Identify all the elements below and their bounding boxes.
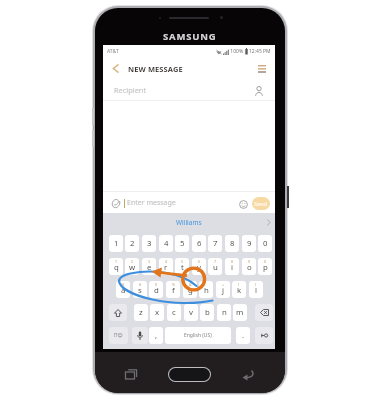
staticText: c: [172, 307, 176, 318]
staticText: +: [222, 282, 225, 287]
staticText: Send: [254, 200, 268, 207]
button[interactable]: 7: [208, 235, 222, 252]
staticText: 3: [148, 259, 151, 264]
staticText: ,: [155, 330, 158, 341]
staticText: 12:45 PM: [249, 48, 271, 55]
button[interactable]: 2: [125, 258, 139, 275]
staticText: English (US): [184, 332, 212, 339]
staticText: (: [238, 282, 240, 287]
staticText: 1: [115, 259, 118, 264]
staticText: 0: [264, 259, 267, 264]
staticText: h: [204, 285, 209, 296]
button[interactable]: Send: [252, 197, 270, 210]
staticText: 9: [248, 259, 251, 264]
staticText: %: [172, 282, 175, 287]
staticText: o: [247, 262, 252, 273]
button[interactable]: 8: [225, 235, 239, 252]
staticText: s: [138, 285, 142, 296]
staticText: g: [188, 285, 193, 296]
button[interactable]: Home: [168, 367, 211, 382]
button[interactable]: 8: [225, 258, 239, 275]
button[interactable]: 4: [159, 235, 173, 252]
staticText: 3: [147, 238, 152, 249]
button[interactable]: x: [150, 304, 164, 321]
button[interactable]: &: [183, 281, 197, 298]
button[interactable]: 9: [242, 258, 256, 275]
button[interactable]: (: [232, 281, 246, 298]
button[interactable]: Recents: [125, 368, 139, 382]
button[interactable]: n: [217, 304, 231, 321]
button[interactable]: 0: [258, 235, 272, 252]
button[interactable]: 7: [208, 258, 222, 275]
button[interactable]: c: [167, 304, 181, 321]
button[interactable]: 2: [125, 235, 139, 252]
staticText: i: [231, 262, 234, 273]
staticText: z: [139, 307, 143, 318]
button[interactable]: Space: [165, 327, 231, 344]
staticText: 7: [214, 259, 217, 264]
staticText: t: [181, 262, 184, 273]
staticText: v: [189, 307, 193, 318]
staticText: y: [197, 262, 201, 273]
button[interactable]: Emoji: [237, 198, 249, 210]
button[interactable]: Attach: [110, 197, 122, 209]
button[interactable]: @: [116, 281, 130, 298]
staticText: m: [236, 307, 244, 318]
button[interactable]: ,: [149, 327, 163, 344]
staticText: x: [155, 307, 160, 318]
button[interactable]: Backspace: [255, 304, 273, 321]
staticText: SAMSUNG: [163, 30, 217, 43]
button[interactable]: Voice input: [132, 327, 148, 344]
staticText: 8: [231, 259, 234, 264]
staticText: 6: [197, 238, 202, 249]
button[interactable]: #: [133, 281, 147, 298]
staticText: ): [255, 282, 257, 287]
button[interactable]: Menu: [255, 62, 268, 75]
button[interactable]: Back: [109, 62, 122, 75]
button[interactable]: 1: [109, 258, 123, 275]
button[interactable]: 5: [175, 258, 189, 275]
staticText: e: [147, 262, 152, 273]
button[interactable]: ): [249, 281, 263, 298]
button[interactable]: 9: [242, 235, 256, 252]
button[interactable]: z: [134, 304, 148, 321]
staticText: r: [164, 262, 168, 273]
staticText: 5: [181, 259, 184, 264]
button[interactable]: 6: [192, 258, 206, 275]
button[interactable]: v: [184, 304, 198, 321]
button[interactable]: Shift: [109, 304, 127, 321]
button[interactable]: 1: [109, 235, 123, 252]
staticText: $: [155, 282, 158, 287]
button[interactable]: m: [233, 304, 247, 321]
button[interactable]: 5: [175, 235, 189, 252]
staticText: w: [129, 262, 136, 273]
staticText: @: [121, 282, 125, 287]
button[interactable]: b: [200, 304, 214, 321]
button[interactable]: Symbols: [109, 327, 128, 344]
staticText: 4: [165, 259, 168, 264]
staticText: l: [255, 285, 258, 296]
staticText: d: [154, 285, 159, 296]
button[interactable]: -: [199, 281, 213, 298]
staticText: .: [242, 330, 245, 341]
button[interactable]: $: [149, 281, 163, 298]
button[interactable]: Back: [241, 368, 255, 382]
button[interactable]: 0: [258, 258, 272, 275]
button[interactable]: 3: [142, 258, 156, 275]
button[interactable]: .: [236, 327, 250, 344]
button[interactable]: Williams: [176, 218, 202, 227]
staticText: 2: [131, 259, 134, 264]
staticText: 0: [263, 238, 268, 249]
staticText: AT&T: [107, 48, 119, 55]
staticText: &: [189, 282, 192, 287]
button[interactable]: Settings: [255, 327, 273, 344]
button[interactable]: 3: [142, 235, 156, 252]
button[interactable]: +: [216, 281, 230, 298]
button[interactable]: %: [166, 281, 180, 298]
button[interactable]: Contacts: [252, 83, 266, 97]
button[interactable]: 6: [192, 235, 206, 252]
button[interactable]: 4: [159, 258, 173, 275]
staticText: !?☺: [114, 332, 123, 339]
staticText: #: [139, 282, 142, 287]
staticText: 7: [213, 238, 218, 249]
